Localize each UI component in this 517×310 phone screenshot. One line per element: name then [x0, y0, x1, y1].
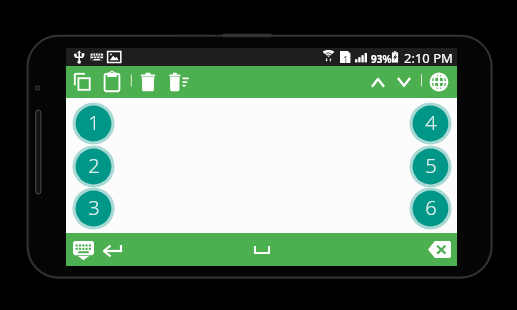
button[interactable]: 4: [409, 102, 452, 145]
button[interactable]: Delete all: [164, 66, 194, 98]
button[interactable]: Scroll down: [389, 66, 419, 98]
button[interactable]: Space: [254, 245, 270, 254]
button[interactable]: Enter: [102, 243, 124, 258]
button[interactable]: Copy: [67, 66, 97, 98]
button[interactable]: 2: [72, 145, 115, 188]
button[interactable]: Paste: [97, 66, 127, 98]
button[interactable]: Scroll up: [363, 66, 393, 98]
staticText: 2: [88, 152, 100, 179]
staticText: 6: [425, 194, 437, 221]
button[interactable]: Translate: [424, 66, 454, 98]
button[interactable]: Hide keyboard: [73, 241, 94, 260]
staticText: 3: [88, 194, 100, 221]
button[interactable]: Delete: [133, 66, 163, 98]
staticText: 2:10 PM: [404, 49, 453, 67]
button[interactable]: 1: [72, 102, 115, 145]
button[interactable]: 6: [409, 187, 452, 230]
button[interactable]: 5: [409, 145, 452, 188]
staticText: 4: [425, 109, 437, 136]
button[interactable]: 3: [72, 187, 115, 230]
staticText: 1: [88, 109, 100, 136]
staticText: 1: [343, 53, 349, 65]
button[interactable]: Backspace: [428, 241, 451, 258]
staticText: 93%: [371, 52, 392, 66]
staticText: 5: [425, 152, 437, 179]
